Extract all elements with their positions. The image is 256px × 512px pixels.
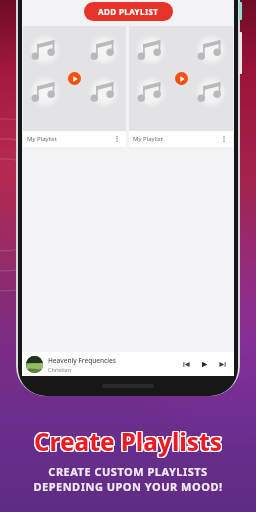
- staticText: Create Playlists: [35, 425, 223, 458]
- staticText: Create Playlists: [35, 424, 223, 457]
- staticText: Create Playlists: [35, 426, 223, 459]
- staticText: My Playlist: [133, 135, 163, 143]
- staticText: Create Playlists: [34, 426, 222, 459]
- staticText: My Playlist: [27, 135, 57, 143]
- button[interactable]: ADD PLAYLIST: [84, 2, 173, 21]
- button[interactable]: Play playlist: [68, 72, 81, 85]
- button[interactable]: Next: [216, 358, 228, 370]
- button[interactable]: Play playlist: [23, 26, 126, 147]
- button[interactable]: More options: [112, 134, 122, 144]
- staticText: Create Playlists: [33, 424, 221, 457]
- button[interactable]: Play playlist: [129, 26, 233, 147]
- staticText: Create Playlists: [33, 426, 221, 459]
- button[interactable]: Heavenly Frequencies: [22, 352, 234, 376]
- button[interactable]: Play playlist: [175, 72, 188, 85]
- button[interactable]: More options: [219, 134, 229, 144]
- button[interactable]: Play: [198, 358, 210, 370]
- staticText: Heavenly Frequencies: [48, 356, 116, 365]
- staticText: CREATE CUSTOM PLAYLISTS DEPENDING UPON Y…: [33, 464, 223, 494]
- staticText: Create Playlists: [34, 424, 222, 457]
- staticText: ADD PLAYLIST: [98, 6, 159, 17]
- button[interactable]: Previous: [180, 358, 192, 370]
- staticText: Create Playlists: [34, 425, 222, 458]
- staticText: Create Playlists: [33, 425, 221, 458]
- staticText: Christian: [48, 366, 72, 373]
